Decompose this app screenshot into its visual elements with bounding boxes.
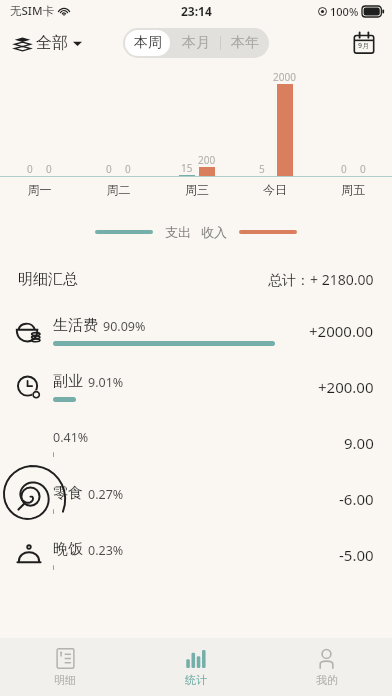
staticText: 全部 [36, 33, 68, 53]
staticText: 0 [27, 162, 33, 176]
staticText: 支出 [165, 224, 191, 240]
button[interactable]: 统计 [130, 638, 261, 696]
staticText: 23:14 [181, 3, 212, 19]
staticText: 0 [125, 162, 131, 176]
staticText: 我的 [316, 673, 338, 687]
staticText: 总计：+ 2180.00 [268, 270, 374, 289]
staticText: 90.09% [103, 318, 146, 335]
button[interactable]: 生活费 [0, 303, 392, 359]
staticText: 明细 [54, 673, 76, 687]
staticText: 0.41% [53, 429, 89, 446]
button[interactable]: 明细 [0, 638, 130, 696]
staticText: -6.00 [339, 489, 374, 509]
staticText: 本年 [231, 34, 259, 52]
staticText: +200.00 [318, 377, 374, 397]
button[interactable]: 本周 [125, 30, 170, 56]
button[interactable]: 我的 [261, 638, 392, 696]
staticText: 2000 [273, 70, 296, 84]
staticText: 周二 [79, 182, 158, 197]
button[interactable]: 全部 [12, 31, 84, 55]
button[interactable]: 零食 [0, 471, 392, 527]
staticText: 5 [259, 162, 265, 176]
staticText: 9.00 [344, 433, 374, 453]
staticText: 9.01% [88, 374, 124, 391]
staticText: 统计 [185, 673, 207, 687]
staticText: 收入 [201, 224, 227, 240]
staticText: 15 [181, 161, 193, 175]
staticText: 无SIM卡 [10, 3, 54, 19]
staticText: 0.27% [88, 486, 124, 503]
staticText: 晚饭 [53, 540, 83, 559]
button[interactable]: 晚饭 [0, 527, 392, 583]
staticText: 今日 [236, 182, 314, 197]
staticText: 副业 [53, 372, 83, 391]
staticText: 周三 [158, 182, 236, 197]
button[interactable]: 0.41% [0, 415, 392, 471]
staticText: +2000.00 [309, 321, 374, 341]
button[interactable]: Select month [348, 27, 380, 59]
staticText: 0 [106, 162, 112, 176]
staticText: 0.23% [88, 542, 124, 559]
staticText: 0 [46, 162, 52, 176]
staticText: 100% [330, 4, 359, 19]
staticText: 0 [360, 162, 366, 176]
staticText: 周五 [314, 182, 392, 197]
staticText: 生活费 [53, 316, 98, 335]
staticText: 0 [341, 162, 347, 176]
staticText: 9月 [358, 41, 370, 51]
staticText: 本月 [182, 34, 210, 52]
staticText: 明细汇总 [18, 270, 78, 289]
button[interactable]: 本月 [172, 28, 220, 58]
button[interactable]: 副业 [0, 359, 392, 415]
staticText: -5.00 [339, 545, 374, 565]
staticText: 零食 [53, 484, 83, 503]
button[interactable]: 本年 [221, 28, 269, 58]
staticText: 本周 [134, 34, 162, 52]
staticText: 200 [198, 153, 216, 167]
staticText: 周一 [0, 182, 79, 197]
